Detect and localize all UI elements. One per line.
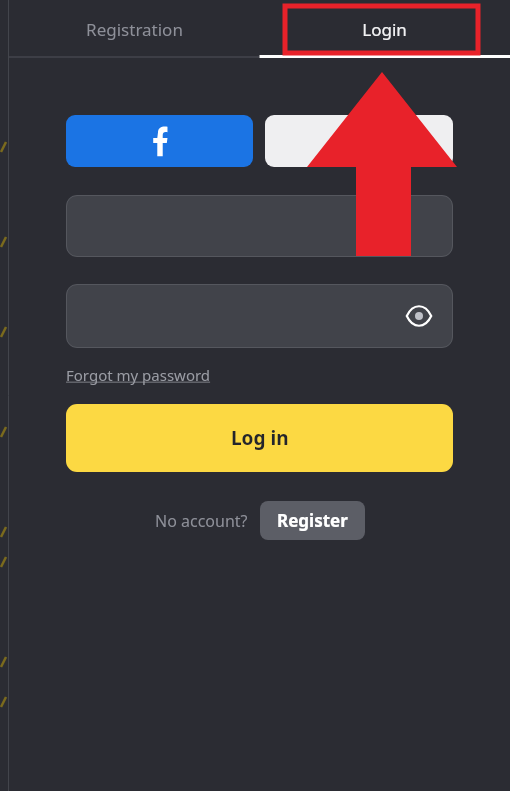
button[interactable]: Sign in with Facebook xyxy=(66,115,253,167)
button[interactable]: Register xyxy=(260,501,365,540)
staticText: No account? xyxy=(155,510,248,532)
button[interactable]: Password xyxy=(66,284,453,348)
button[interactable]: Log in xyxy=(66,404,453,472)
staticText: Log in xyxy=(231,425,289,451)
staticText: Register xyxy=(277,509,348,532)
button[interactable]: Login xyxy=(259,0,510,58)
button[interactable]: Registration xyxy=(9,0,259,58)
button[interactable]: Sign in with Google xyxy=(265,115,453,167)
button[interactable]: Email or phone xyxy=(66,195,453,257)
staticText: Forgot my password xyxy=(66,365,211,385)
button[interactable]: Forgot my password xyxy=(66,365,211,385)
staticText: Login xyxy=(362,18,407,41)
staticText: Registration xyxy=(86,18,183,41)
button[interactable]: Show password xyxy=(399,296,439,336)
